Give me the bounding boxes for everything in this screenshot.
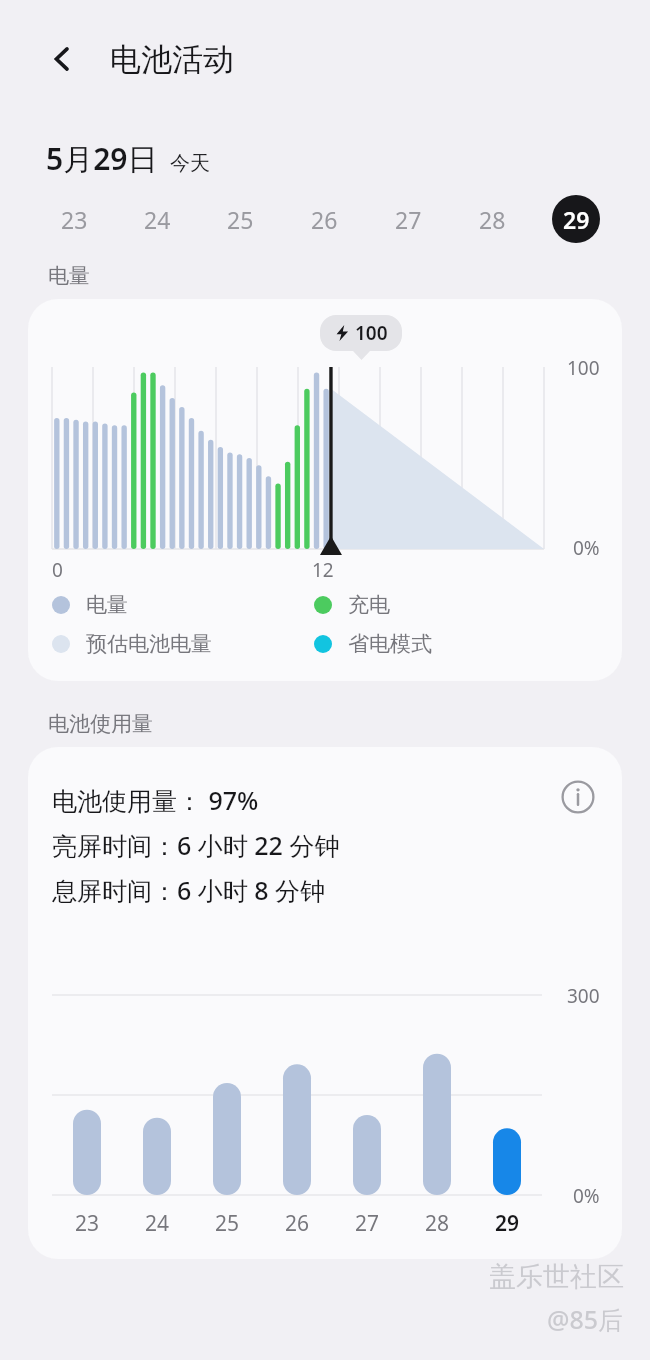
staticText: 26: [285, 1209, 310, 1238]
staticText: 0%: [573, 535, 600, 561]
staticText: 电池使用量： 97%: [52, 783, 259, 817]
staticText: 电量: [86, 592, 128, 618]
button[interactable]: 27: [384, 195, 432, 243]
staticText: 12: [312, 557, 334, 583]
button[interactable]: 23: [50, 195, 98, 243]
button[interactable]: 充电: [314, 592, 622, 618]
button[interactable]: 24: [133, 195, 181, 243]
staticText: @85后: [547, 1302, 624, 1336]
staticText: 29: [495, 1209, 520, 1238]
button[interactable]: 省电模式: [314, 631, 622, 657]
button[interactable]: 29: [552, 195, 600, 243]
staticText: 0%: [573, 1183, 600, 1209]
staticText: 5月29日: [46, 138, 158, 179]
staticText: 今天: [170, 151, 210, 176]
button[interactable]: 100: [28, 299, 622, 681]
staticText: 24: [144, 204, 171, 235]
staticText: 省电模式: [348, 631, 432, 657]
button[interactable]: 26: [300, 195, 348, 243]
staticText: 0: [52, 557, 63, 583]
staticText: 300: [567, 983, 600, 1009]
button[interactable]: Back: [38, 35, 86, 83]
button[interactable]: 电池使用量： 97%: [28, 747, 622, 1259]
staticText: 充电: [348, 592, 390, 618]
staticText: 29: [563, 204, 590, 235]
staticText: 亮屏时间：6 小时 22 分钟: [52, 828, 340, 862]
staticText: 27: [355, 1209, 380, 1238]
staticText: 25: [227, 204, 254, 235]
button[interactable]: Info: [554, 773, 602, 821]
staticText: 100: [355, 320, 388, 346]
staticText: 25: [215, 1209, 240, 1238]
button[interactable]: 电量: [52, 592, 314, 618]
staticText: 28: [425, 1209, 450, 1238]
staticText: 电量: [48, 263, 90, 289]
staticText: 100: [567, 355, 600, 381]
staticText: 27: [395, 204, 422, 235]
staticText: 盖乐世社区: [489, 1260, 624, 1294]
button[interactable]: 28: [468, 195, 516, 243]
staticText: 24: [145, 1209, 170, 1238]
button[interactable]: 预估电池电量: [52, 631, 314, 657]
staticText: 电池使用量: [48, 711, 153, 737]
button[interactable]: 25: [216, 195, 264, 243]
staticText: 息屏时间：6 小时 8 分钟: [52, 873, 326, 907]
staticText: 23: [75, 1209, 100, 1238]
staticText: 预估电池电量: [86, 631, 212, 657]
staticText: 28: [479, 204, 506, 235]
staticText: 23: [61, 204, 88, 235]
staticText: 26: [311, 204, 338, 235]
staticText: 电池活动: [110, 40, 234, 79]
